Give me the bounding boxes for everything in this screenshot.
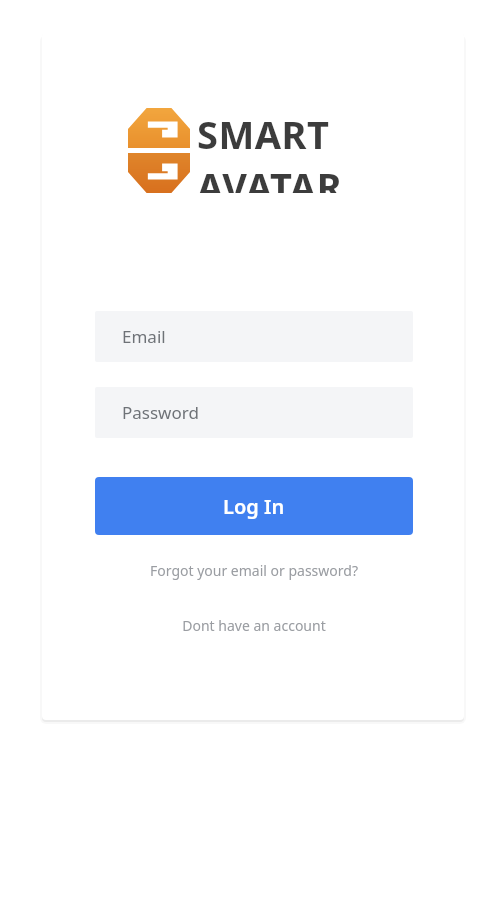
staticText: Forgot your email or password? bbox=[150, 561, 358, 580]
button[interactable]: Password bbox=[95, 387, 413, 438]
staticText: Dont have an account bbox=[182, 616, 326, 635]
staticText: Email bbox=[122, 325, 166, 348]
button[interactable]: Forgot your email or password? bbox=[95, 556, 413, 584]
staticText: Log In bbox=[223, 493, 285, 520]
button[interactable]: Log In bbox=[95, 477, 413, 535]
button[interactable]: Email bbox=[95, 311, 413, 362]
button[interactable]: Dont have an account bbox=[95, 611, 413, 639]
staticText: AVATAR bbox=[197, 160, 343, 193]
staticText: Password bbox=[122, 401, 199, 424]
staticText: SMART bbox=[197, 108, 330, 160]
other: Smart Avatar logo bbox=[128, 108, 190, 193]
